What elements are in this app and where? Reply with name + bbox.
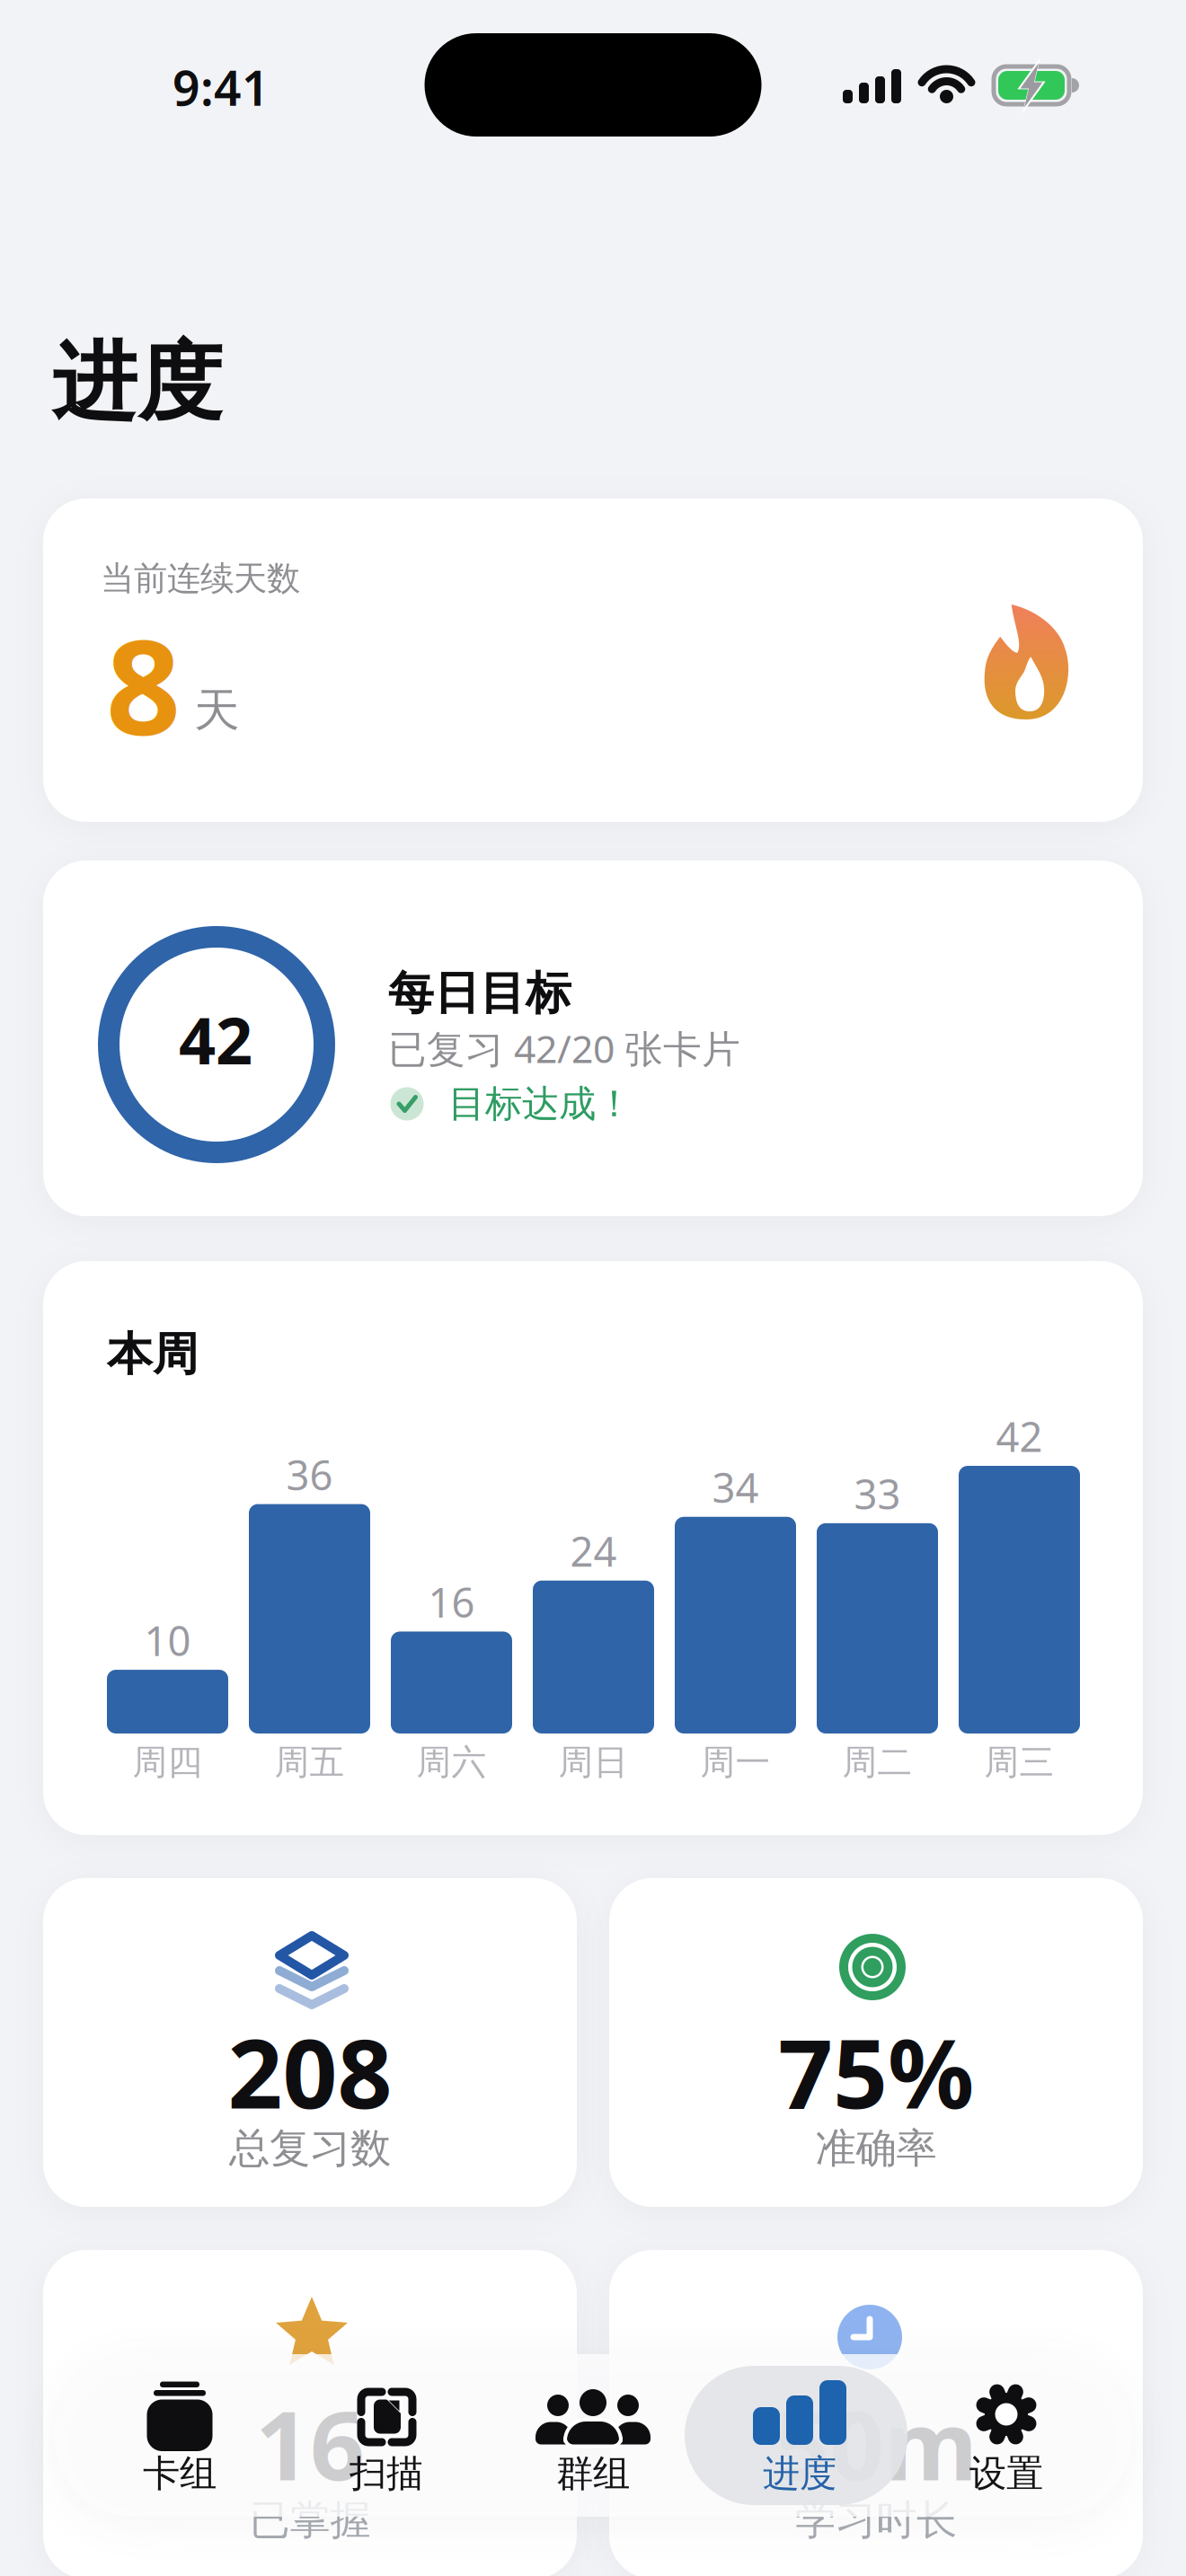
staticText: 周五 bbox=[274, 1741, 345, 1784]
staticText: 周三 bbox=[984, 1741, 1054, 1784]
staticText: 10 bbox=[144, 1613, 191, 1667]
staticText: 周二 bbox=[842, 1741, 912, 1784]
staticText: 总复习数 bbox=[229, 2123, 391, 2174]
staticText: 34 bbox=[712, 1460, 759, 1514]
button[interactable]: 进度 bbox=[701, 2359, 898, 2512]
staticText: 准确率 bbox=[815, 2123, 937, 2174]
staticText: 16 bbox=[428, 1575, 475, 1629]
staticText: 16 bbox=[255, 2379, 365, 2507]
staticText: 进度 bbox=[52, 330, 223, 435]
staticText: 卡组 bbox=[143, 2451, 217, 2496]
staticText: 周六 bbox=[416, 1741, 487, 1784]
staticText: 36 bbox=[286, 1447, 333, 1501]
staticText: 周四 bbox=[133, 1741, 203, 1784]
staticText: 天 bbox=[194, 683, 240, 738]
staticText: 50m bbox=[774, 2379, 978, 2507]
button[interactable]: 群组 bbox=[494, 2359, 692, 2512]
staticText: 周一 bbox=[700, 1741, 770, 1784]
staticText: 已复习 42/20 张卡片 bbox=[388, 1023, 740, 1074]
button[interactable]: 扫描 bbox=[288, 2359, 485, 2512]
staticText: 75% bbox=[778, 2008, 974, 2135]
staticText: 本周 bbox=[107, 1327, 199, 1382]
staticText: 已掌握 bbox=[249, 2495, 371, 2545]
staticText: 当前连续天数 bbox=[101, 558, 300, 599]
staticText: 学习时长 bbox=[795, 2495, 957, 2545]
button[interactable]: 卡组 bbox=[81, 2359, 279, 2512]
staticText: 设置 bbox=[969, 2451, 1043, 2496]
staticText: 周日 bbox=[558, 1741, 628, 1784]
staticText: 每日目标 bbox=[388, 965, 571, 1021]
staticText: 进度 bbox=[763, 2451, 836, 2496]
staticText: 扫描 bbox=[350, 2451, 423, 2496]
staticText: 9:41 bbox=[173, 55, 270, 119]
staticText: 33 bbox=[854, 1467, 901, 1521]
button[interactable]: 设置 bbox=[907, 2359, 1105, 2512]
staticText: 群组 bbox=[556, 2451, 630, 2496]
staticText: 24 bbox=[570, 1524, 617, 1578]
staticText: 42 bbox=[996, 1409, 1043, 1463]
staticText: 208 bbox=[228, 2008, 392, 2135]
staticText: 8 bbox=[106, 598, 181, 771]
staticText: 目标达成！ bbox=[448, 1081, 633, 1127]
staticText: 42 bbox=[179, 996, 252, 1082]
